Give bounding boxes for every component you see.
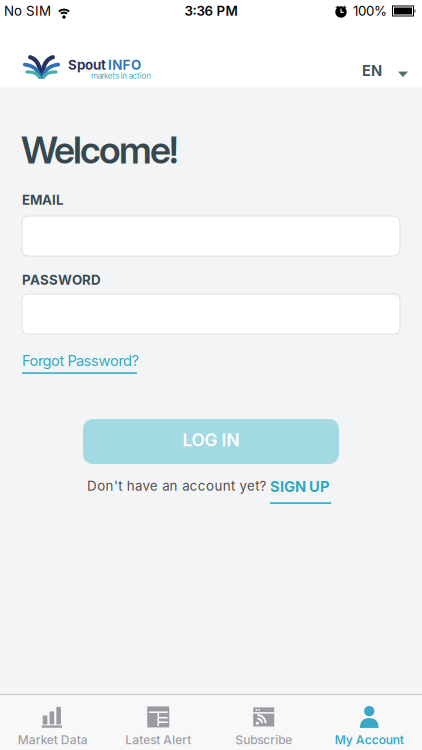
staticText: My Account <box>335 733 404 747</box>
button[interactable]: Market Data <box>0 695 105 749</box>
button[interactable]: LOG IN <box>83 419 339 464</box>
staticText: Don't have an account yet? <box>87 478 266 494</box>
staticText: SIGN UP <box>270 478 330 495</box>
staticText: Subscribe <box>235 733 292 747</box>
button[interactable]: Latest Alert <box>105 695 211 749</box>
staticText: 100% <box>353 3 387 19</box>
staticText: No SIM <box>4 3 51 19</box>
staticText: Spout <box>68 57 106 73</box>
staticText: Welcome! <box>21 128 179 172</box>
staticText: Latest Alert <box>125 733 191 747</box>
staticText: Market Data <box>18 733 88 747</box>
button[interactable]: Subscribe <box>211 695 316 749</box>
staticText: EMAIL <box>22 192 64 208</box>
staticText: 3:36 PM <box>184 3 237 19</box>
button[interactable]: My Account <box>316 695 422 749</box>
button[interactable] <box>22 294 400 334</box>
staticText: LOG IN <box>182 430 239 450</box>
staticText: EN <box>362 62 382 79</box>
staticText: markets in action <box>91 71 151 80</box>
staticText: INFO <box>108 57 141 73</box>
button[interactable]: Forgot Password? <box>22 352 138 374</box>
button[interactable] <box>22 216 400 256</box>
staticText: PASSWORD <box>22 272 101 288</box>
button[interactable]: EN <box>362 62 408 80</box>
button[interactable]: SIGN UP <box>270 478 331 504</box>
staticText: Forgot Password? <box>22 352 138 369</box>
